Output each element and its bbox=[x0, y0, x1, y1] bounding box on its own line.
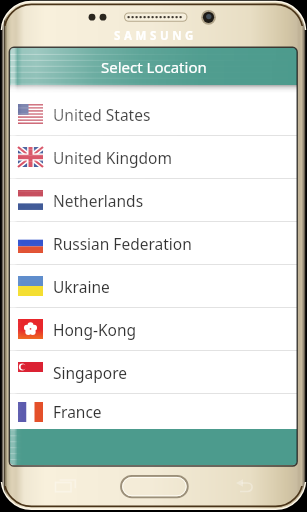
button[interactable]: Bottom bar bbox=[10, 429, 297, 465]
button[interactable]: Select Location bbox=[10, 48, 297, 85]
staticText: Netherlands bbox=[53, 190, 144, 211]
button[interactable]: United Kingdom bbox=[10, 136, 297, 178]
staticText: Hong-Kong bbox=[53, 319, 137, 340]
staticText: Select Location bbox=[101, 57, 207, 77]
staticText: United Kingdom bbox=[53, 147, 172, 168]
button[interactable]: Singapore bbox=[10, 351, 297, 393]
button[interactable]: Ukraine bbox=[10, 265, 297, 307]
button[interactable]: United States bbox=[10, 93, 297, 135]
button[interactable]: Netherlands bbox=[10, 179, 297, 221]
staticText: SAMSUNG bbox=[114, 28, 198, 44]
staticText: Russian Federation bbox=[53, 233, 192, 254]
button[interactable]: Hong-Kong bbox=[10, 308, 297, 350]
button[interactable]: France bbox=[10, 394, 297, 429]
staticText: United States bbox=[53, 104, 151, 125]
staticText: Singapore bbox=[53, 362, 128, 383]
staticText: Ukraine bbox=[53, 276, 110, 297]
staticText: France bbox=[53, 401, 102, 422]
button[interactable]: Russian Federation bbox=[10, 222, 297, 264]
